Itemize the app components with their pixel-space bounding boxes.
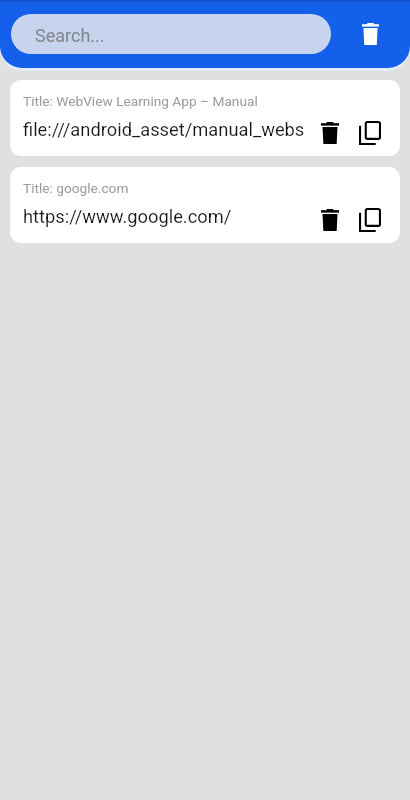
button[interactable]: Search... — [11, 14, 331, 54]
staticText: Title: WebView Learning App – Manual — [23, 93, 258, 109]
button[interactable]: Copy link — [351, 201, 389, 239]
button[interactable]: Title: WebView Learning App – Manual — [10, 80, 400, 156]
staticText: Title: google.com — [23, 180, 129, 196]
button[interactable]: Delete entry — [311, 114, 349, 152]
button[interactable]: Clear all history — [350, 14, 390, 54]
staticText: file:///android_asset/manual_website/ind… — [23, 119, 305, 140]
staticText: Search... — [35, 25, 105, 46]
staticText: https://www.google.com/ — [23, 206, 232, 227]
button[interactable]: Title: google.com — [10, 167, 400, 243]
button[interactable]: Delete entry — [311, 201, 349, 239]
button[interactable]: Copy link — [351, 114, 389, 152]
